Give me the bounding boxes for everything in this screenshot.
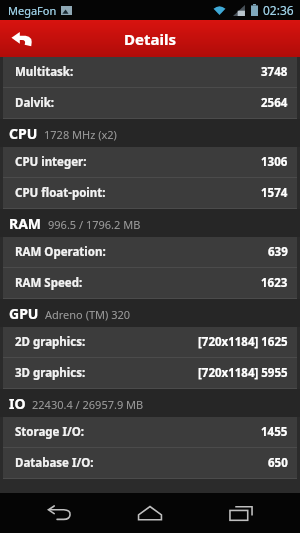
button[interactable]: 2D graphics: [3, 327, 297, 357]
staticText: CPU integer: [15, 154, 87, 170]
button[interactable]: Database I/O: [3, 448, 297, 478]
staticText: 3748 [261, 64, 288, 80]
staticText: 2564 [261, 95, 288, 111]
staticText: 1574 [261, 185, 288, 201]
staticText: RAM Operation: [15, 244, 106, 260]
staticText: 996.5 / 1796.2 MB [48, 217, 141, 232]
staticText: Dalvik: [15, 95, 55, 111]
staticText: RAM [9, 214, 42, 233]
button[interactable]: Back [0, 20, 44, 57]
staticText: 1728 MHz (x2) [44, 127, 117, 142]
staticText: CPU [9, 124, 38, 143]
button[interactable]: Home [118, 493, 182, 533]
staticText: IO [9, 394, 26, 413]
staticText: 650 [268, 455, 288, 471]
staticText: 639 [268, 244, 288, 260]
staticText: 2D graphics: [15, 334, 86, 350]
staticText: [720x1184] 5955 [198, 365, 288, 381]
staticText: Storage I/O: [15, 424, 85, 440]
staticText: 1455 [261, 424, 288, 440]
button[interactable]: Storage I/O: [3, 417, 297, 447]
staticText: Multitask: [15, 64, 74, 80]
button[interactable]: RAM Operation: [3, 237, 297, 267]
button[interactable]: Recent apps [209, 493, 273, 533]
button[interactable]: Multitask: [3, 57, 297, 87]
button[interactable]: RAM Speed: [3, 268, 297, 298]
staticText: 1306 [261, 154, 288, 170]
button[interactable]: CPU float-point: [3, 178, 297, 208]
staticText: Adreno (TM) 320 [45, 307, 131, 322]
staticText: 3D graphics: [15, 365, 86, 381]
staticText: 02:36 [263, 2, 294, 18]
staticText: CPU float-point: [15, 185, 106, 201]
staticText: 22430.4 / 26957.9 MB [32, 397, 144, 412]
button[interactable]: 3D graphics: [3, 358, 297, 388]
button[interactable]: CPU integer: [3, 147, 297, 177]
staticText: 1623 [261, 275, 288, 291]
staticText: Details [124, 29, 176, 49]
button[interactable]: Dalvik: [3, 88, 297, 118]
staticText: Database I/O: [15, 455, 94, 471]
staticText: MegaFon [8, 3, 57, 18]
staticText: RAM Speed: [15, 275, 83, 291]
button[interactable]: Back [27, 493, 91, 533]
staticText: GPU [9, 304, 39, 323]
staticText: [720x1184] 1625 [198, 334, 288, 350]
